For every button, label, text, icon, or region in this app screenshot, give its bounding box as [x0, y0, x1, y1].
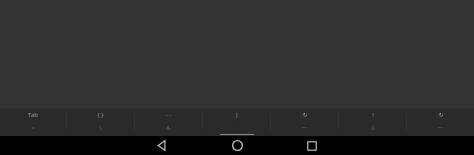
staticText: ↻ — [438, 111, 444, 118]
button[interactable]: Back — [150, 136, 174, 155]
staticText: ↓ — [370, 124, 376, 131]
button[interactable]: · · — [135, 108, 202, 136]
staticText: · · — [166, 111, 171, 119]
staticText: = — [31, 124, 35, 132]
button[interactable]: ↻ — [407, 108, 474, 136]
staticText: | — [235, 111, 239, 119]
staticText: \ — [99, 124, 102, 132]
button[interactable]: Tab — [0, 108, 66, 136]
staticText: ↻ — [302, 111, 308, 118]
button[interactable]: Recent apps — [300, 136, 324, 155]
button[interactable]: | — [203, 108, 270, 136]
button[interactable]: Home — [225, 136, 249, 155]
staticText: ! — [372, 111, 374, 119]
button[interactable]: ↻ — [271, 108, 338, 136]
button[interactable]: { } — [67, 108, 134, 136]
staticText: — — [301, 123, 308, 131]
staticText: Tab — [28, 111, 38, 119]
staticText: — — [437, 123, 444, 131]
staticText: : — [236, 124, 238, 132]
staticText: & — [166, 124, 171, 132]
staticText: { } — [97, 111, 104, 119]
